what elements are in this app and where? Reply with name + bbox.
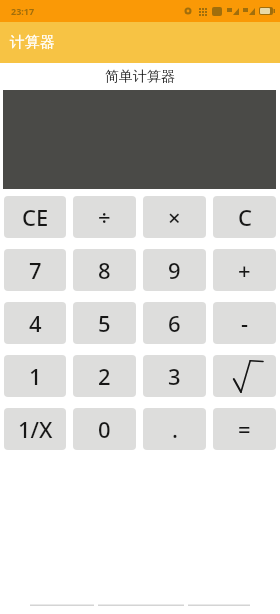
staticText: 1/X [18,414,53,444]
button[interactable]: - [213,302,276,344]
button[interactable]: + [213,249,276,291]
button[interactable]: CE [4,196,66,238]
staticText: 4 [29,308,42,338]
staticText: 3 [168,361,181,391]
staticText: = [238,414,251,444]
staticText: - [241,308,249,338]
staticText: 23:17 [11,5,35,17]
button[interactable]: 2 [73,355,136,397]
button[interactable]: 9 [143,249,206,291]
button[interactable]: 8 [73,249,136,291]
staticText: 8 [98,255,111,285]
staticText: 7 [29,255,42,285]
staticText: . [172,414,178,444]
button[interactable]: . [143,408,206,450]
staticText: 计算器 [10,33,55,52]
button[interactable]: 5 [73,302,136,344]
button[interactable]: C [213,196,276,238]
button[interactable]: = [213,408,276,450]
button[interactable]: 4 [4,302,66,344]
staticText: 简单计算器 [105,68,175,86]
button[interactable]: 1/X [4,408,66,450]
button[interactable]: 7 [4,249,66,291]
staticText: 0 [98,414,111,444]
staticText: CE [22,202,49,232]
button[interactable] [213,355,276,397]
button[interactable]: 0 [73,408,136,450]
button[interactable]: 1 [4,355,66,397]
staticText: ÷ [98,202,111,232]
staticText: 9 [168,255,181,285]
staticText: × [168,202,181,232]
staticText: 6 [168,308,181,338]
staticText: + [238,255,251,285]
button[interactable]: × [143,196,206,238]
staticText: 1 [29,361,42,391]
button[interactable]: 3 [143,355,206,397]
button[interactable]: ÷ [73,196,136,238]
staticText: C [238,202,252,232]
button[interactable]: 6 [143,302,206,344]
staticText: 2 [98,361,111,391]
staticText: 5 [98,308,111,338]
